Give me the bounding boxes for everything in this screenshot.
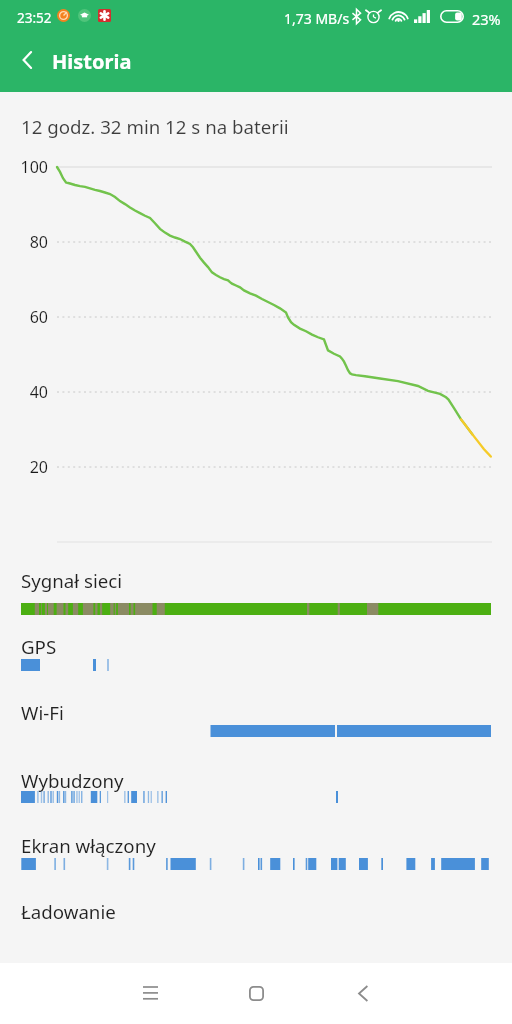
- staticText: 20: [0, 456, 48, 478]
- staticText: Ładowanie: [21, 899, 116, 924]
- staticText: 1,73 MB/s: [284, 9, 350, 28]
- button[interactable]: Back: [4, 36, 52, 84]
- button[interactable]: Back: [339, 969, 387, 1017]
- staticText: GPS: [21, 634, 57, 659]
- staticText: 60: [0, 306, 48, 328]
- staticText: Wybudzony: [21, 768, 124, 793]
- staticText: 23%: [472, 9, 501, 29]
- staticText: 12 godz. 32 min 12 s na baterii: [21, 114, 289, 139]
- staticText: 80: [0, 231, 48, 253]
- button[interactable]: Home: [232, 969, 280, 1017]
- staticText: Wi-Fi: [21, 700, 64, 725]
- staticText: Historia: [52, 48, 132, 75]
- staticText: Ekran włączony: [21, 833, 156, 858]
- staticText: 23:52: [17, 9, 52, 27]
- staticText: 40: [0, 381, 48, 403]
- staticText: Sygnał sieci: [21, 568, 123, 593]
- staticText: 100: [0, 156, 48, 178]
- button[interactable]: Recent apps: [126, 969, 174, 1017]
